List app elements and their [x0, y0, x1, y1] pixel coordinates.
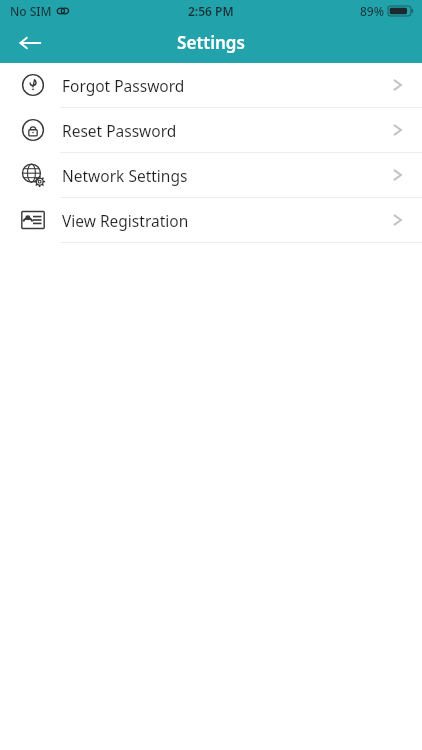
staticText: No SIM [10, 3, 52, 19]
button[interactable]: Back [10, 23, 50, 63]
staticText: View Registration [62, 210, 391, 231]
button[interactable]: Reset Password [0, 108, 422, 153]
staticText: 89% [360, 3, 384, 19]
button[interactable]: View Registration [0, 198, 422, 243]
staticText: Reset Password [62, 120, 391, 141]
button[interactable]: Forgot Password [0, 63, 422, 108]
staticText: Forgot Password [62, 75, 391, 96]
staticText: Settings [177, 31, 245, 54]
staticText: 2:56 PM [188, 3, 234, 19]
button[interactable]: Network Settings [0, 153, 422, 198]
staticText: Network Settings [62, 165, 391, 186]
